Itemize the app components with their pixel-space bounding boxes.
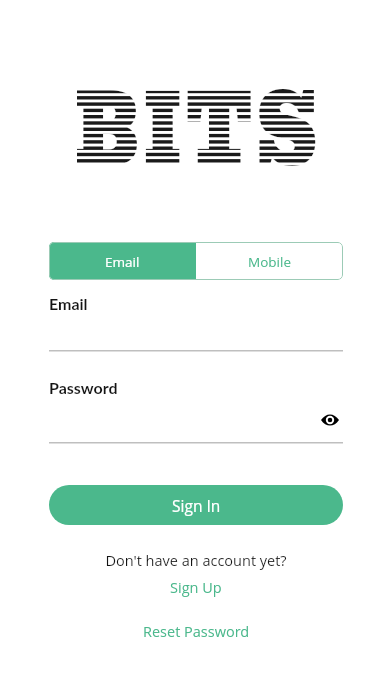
button[interactable]: Sign In [49, 485, 343, 525]
staticText: Don't have an account yet? [105, 551, 287, 571]
button[interactable]: Reset Password [131, 619, 262, 645]
staticText: Sign Up [170, 578, 222, 598]
staticText: Sign In [172, 495, 221, 516]
staticText: Email [105, 253, 140, 271]
button[interactable]: Email [49, 294, 88, 313]
button[interactable]: Sign Up [158, 575, 234, 601]
button[interactable]: Mobile [196, 242, 343, 280]
staticText: Mobile [248, 253, 292, 271]
staticText: Email [49, 294, 88, 313]
button[interactable]: Show password [317, 407, 343, 433]
button[interactable]: Email [49, 242, 196, 280]
staticText: Password [49, 378, 118, 397]
button[interactable]: Password [49, 378, 118, 397]
staticText: Reset Password [143, 622, 250, 642]
